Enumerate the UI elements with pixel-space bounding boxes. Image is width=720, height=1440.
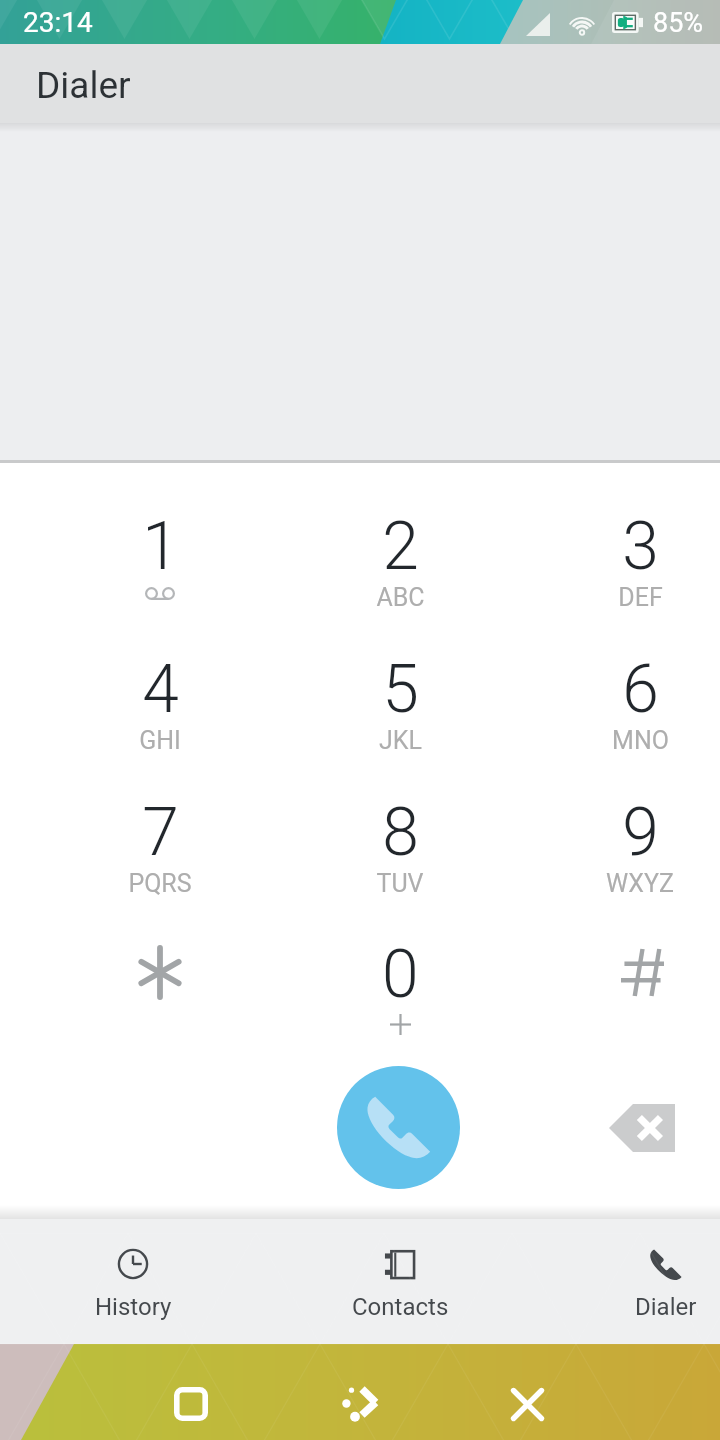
staticText: 6 — [622, 651, 659, 728]
staticText: JKL — [379, 726, 422, 755]
staticText: 7 — [142, 794, 179, 871]
staticText: GHI — [139, 726, 181, 755]
button[interactable]: 9 — [535, 780, 720, 915]
staticText: WXYZ — [606, 869, 674, 898]
staticText: 4 — [142, 651, 179, 728]
staticText: 2 — [382, 508, 419, 585]
button[interactable]: Back — [288, 1344, 428, 1440]
button[interactable]: Dialer — [556, 1219, 720, 1344]
button[interactable]: 7 — [55, 780, 265, 915]
button[interactable]: 5 — [295, 637, 505, 772]
button[interactable]: Call — [337, 1066, 460, 1189]
button[interactable]: 6 — [535, 637, 720, 772]
staticText: History — [95, 1293, 172, 1321]
staticText: 0 — [382, 936, 419, 1013]
staticText: MNO — [612, 726, 669, 755]
button[interactable]: 4 — [55, 637, 265, 772]
staticText: 5 — [382, 651, 419, 728]
button[interactable]: 3 — [535, 494, 720, 629]
button[interactable]: Star — [70, 921, 250, 1049]
button[interactable]: 2 — [295, 494, 505, 629]
button[interactable]: Close — [457, 1344, 597, 1440]
staticText: TUV — [376, 869, 424, 898]
button[interactable]: 1 — [55, 494, 265, 629]
staticText: Dialer — [36, 64, 131, 107]
button[interactable]: Home — [121, 1344, 261, 1440]
button[interactable]: Backspace — [590, 1080, 694, 1176]
staticText: 3 — [622, 508, 659, 585]
button[interactable]: History — [23, 1219, 243, 1344]
button[interactable]: Contacts — [290, 1219, 510, 1344]
staticText: 85% — [653, 7, 704, 39]
staticText: ABC — [376, 583, 425, 612]
button[interactable]: 0 — [295, 922, 505, 1052]
staticText: 9 — [622, 794, 659, 871]
button[interactable]: Pound — [550, 921, 720, 1049]
staticText: 1 — [142, 508, 179, 585]
staticText: 8 — [382, 794, 419, 871]
staticText: PQRS — [128, 869, 192, 898]
staticText: 23:14 — [23, 6, 93, 39]
button[interactable]: 8 — [295, 780, 505, 915]
staticText: Contacts — [352, 1293, 449, 1321]
staticText: DEF — [618, 583, 663, 612]
staticText: Dialer — [635, 1293, 697, 1321]
